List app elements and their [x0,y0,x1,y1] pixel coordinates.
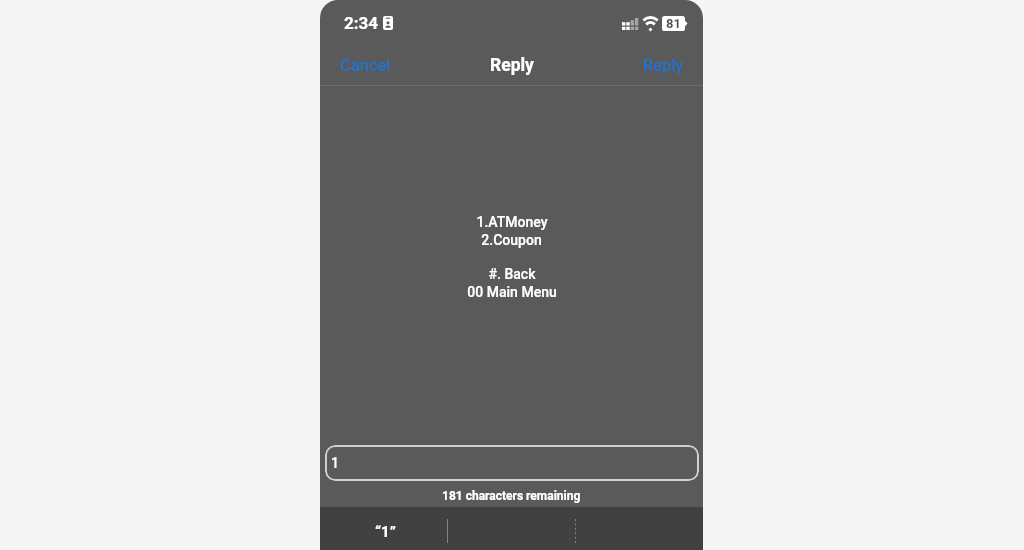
other: SIM card [383,16,393,30]
button[interactable] [447,507,575,550]
button[interactable]: Cancel [320,49,411,82]
button[interactable]: Reply [624,49,703,82]
staticText: 2:34 [344,13,379,33]
staticText: Reply [490,55,534,76]
staticText: Reply [643,56,684,75]
staticText: 81 [666,16,681,31]
other: Mobile signal [622,18,638,30]
staticText: “1” [375,523,396,541]
other: Wi-Fi [643,16,658,31]
button[interactable]: 1 [325,445,699,481]
other: Battery 81 percent [662,16,688,31]
staticText: 1.ATMoney [476,214,548,230]
staticText: Cancel [340,56,391,75]
staticText: 00 Main Menu [467,284,557,300]
staticText: #. Back [488,266,536,282]
button[interactable]: “1” [320,507,447,550]
staticText: 1 [331,455,339,471]
staticText: 181 characters remaining [442,489,581,503]
staticText: 2.Coupon [481,232,542,248]
